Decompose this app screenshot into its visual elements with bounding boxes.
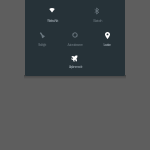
staticText: Bluetooth [93,19,102,23]
staticText: Location [103,43,111,47]
button[interactable]: Bluetooth [81,5,113,23]
button[interactable]: Auto rotate screen [59,29,91,47]
staticText: Wireless Net [47,19,58,23]
button[interactable]: Airplane mode [59,52,91,69]
button[interactable]: Flashlight [26,29,58,47]
staticText: Flashlight [38,43,46,47]
button[interactable]: Wireless Net [36,4,68,23]
staticText: Airplane mode [69,65,82,69]
staticText: Auto rotate screen [67,43,83,47]
button[interactable]: Location [91,29,123,47]
